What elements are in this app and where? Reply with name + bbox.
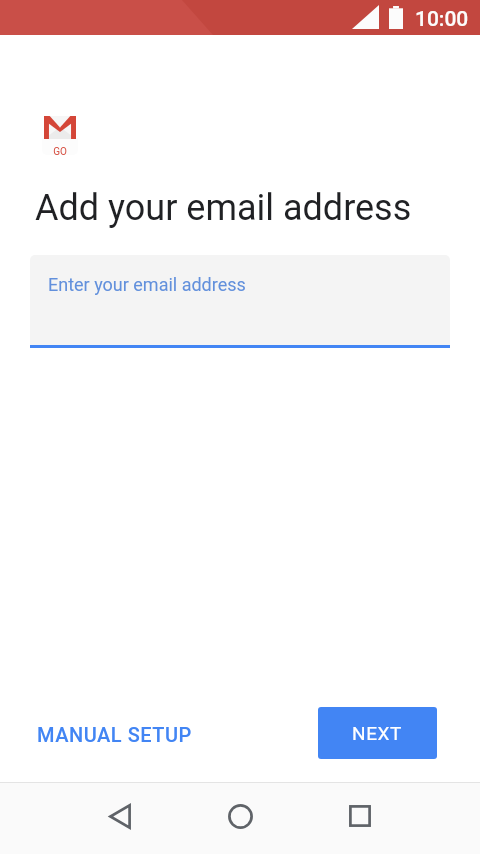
staticText: 10:00: [415, 7, 469, 32]
staticText: Enter your email address: [48, 274, 246, 295]
staticText: MANUAL SETUP: [37, 723, 192, 746]
button[interactable]: NEXT: [318, 707, 437, 759]
button[interactable]: Recent apps: [336, 792, 384, 840]
button[interactable]: Back: [96, 792, 144, 840]
staticText: NEXT: [352, 722, 403, 744]
button[interactable]: Home: [216, 792, 264, 840]
button[interactable]: MANUAL SETUP: [25, 714, 204, 755]
staticText: Add your email address: [35, 187, 412, 229]
button[interactable]: Enter your email address: [30, 255, 450, 348]
staticText: GO: [53, 146, 67, 158]
